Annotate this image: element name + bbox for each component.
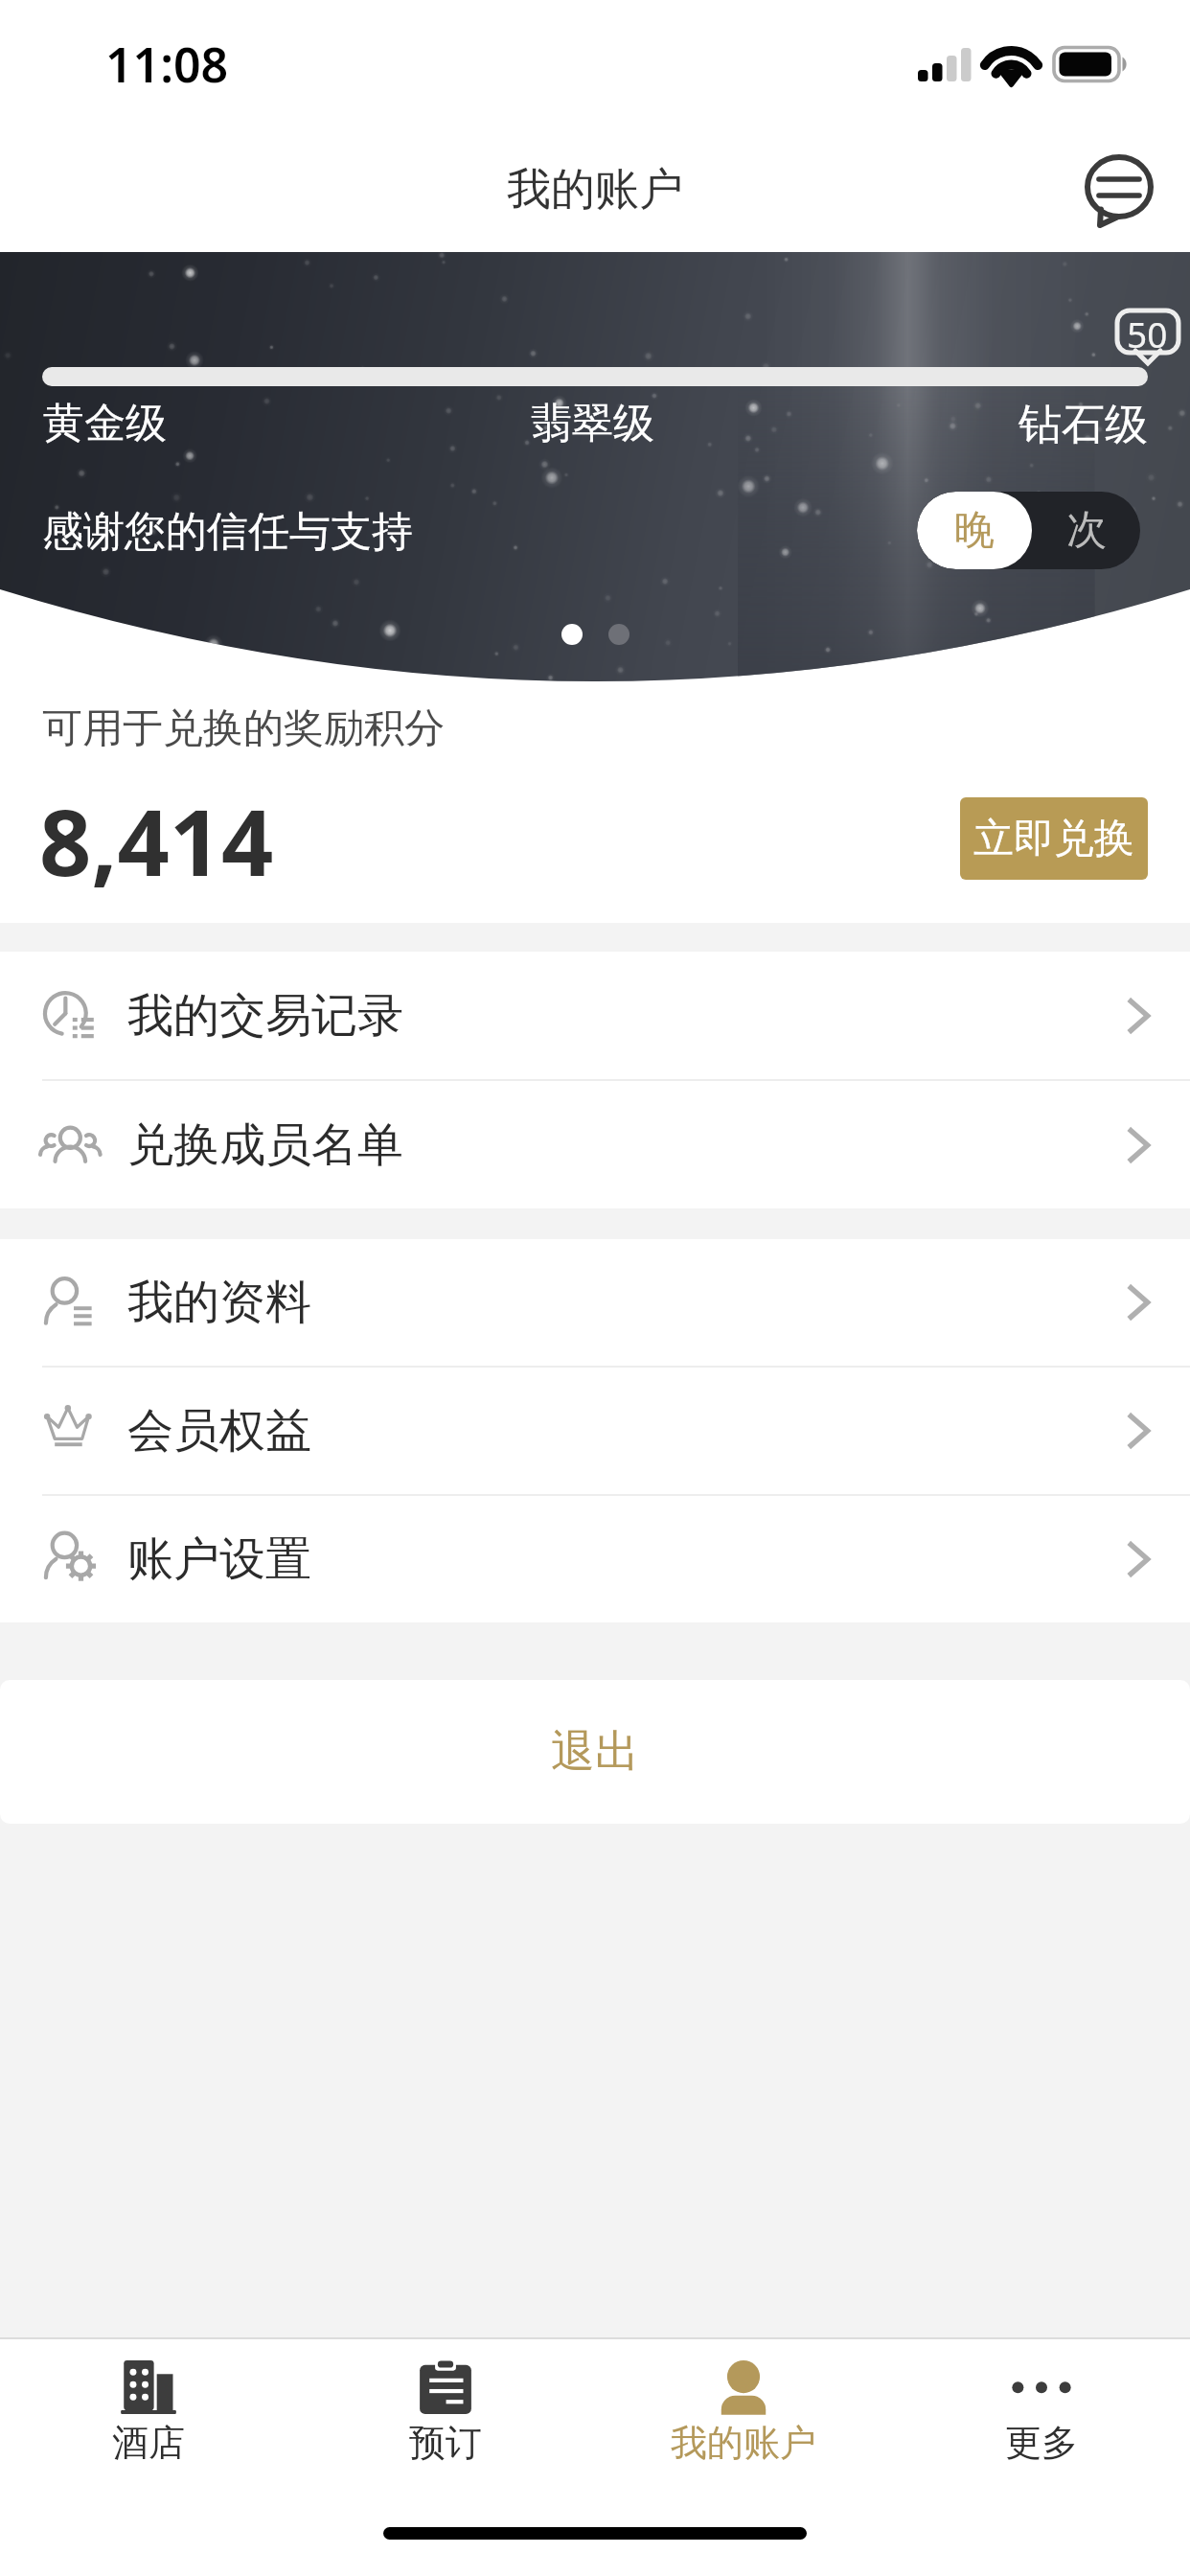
button[interactable]: 我的资料 [0,1239,1190,1366]
staticText: 钻石级 [1018,398,1148,452]
button[interactable]: 退出 [0,1680,1190,1824]
button[interactable]: 会员权益 [0,1368,1190,1494]
staticText: 我的交易记录 [127,987,403,1045]
button[interactable]: 更多 [892,2339,1190,2468]
staticText: 会员权益 [127,1402,311,1460]
staticText: 次 [1066,505,1107,556]
staticText: 我的资料 [127,1274,311,1331]
staticText: 可用于兑换的奖励积分 [42,703,445,754]
staticText: 酒店 [112,2420,185,2466]
button[interactable]: 酒店 [0,2339,297,2468]
staticText: 账户设置 [127,1530,311,1588]
staticText: 兑换成员名单 [127,1116,403,1174]
staticText: 我的账户 [671,2420,816,2466]
button[interactable]: 次 [1032,492,1140,569]
staticText: 黄金级 [43,398,167,449]
button[interactable]: Chat [1083,153,1156,226]
button[interactable]: 我的账户 [594,2339,892,2468]
button[interactable]: 兑换成员名单 [0,1081,1190,1208]
staticText: 50 [1127,310,1168,357]
button[interactable]: 账户设置 [0,1496,1190,1622]
staticText: 我的账户 [507,162,683,218]
button[interactable]: 立即兑换 [960,797,1148,880]
staticText: 11:08 [105,32,229,97]
staticText: 预订 [409,2420,482,2466]
button[interactable]: 晚 [917,492,1032,569]
staticText: 晚 [954,505,995,556]
staticText: 翡翠级 [531,398,654,449]
button[interactable]: 预订 [297,2339,594,2468]
staticText: 更多 [1005,2420,1078,2466]
button[interactable]: 我的交易记录 [0,952,1190,1079]
staticText: 感谢您的信任与支持 [42,506,413,558]
staticText: 退出 [551,1724,639,1780]
staticText: 立即兑换 [973,814,1134,864]
staticText: 8,414 [39,778,274,902]
